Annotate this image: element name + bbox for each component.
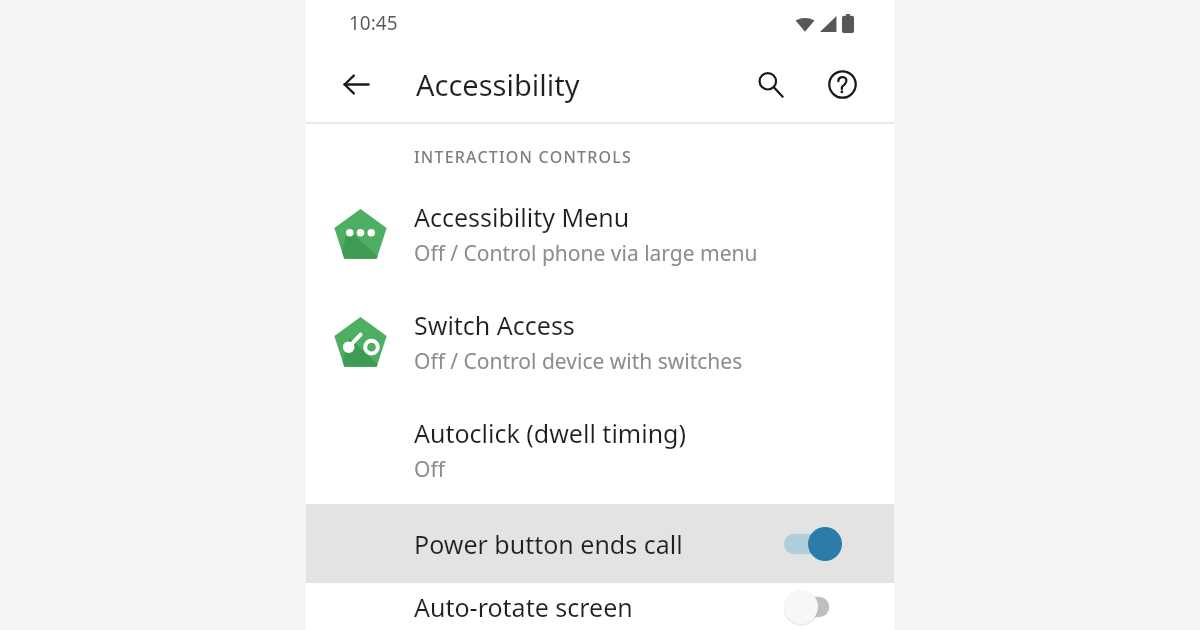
staticText: Off: [414, 455, 445, 484]
staticText: Power button ends call: [414, 527, 683, 561]
staticText: 10:45: [349, 10, 398, 36]
staticText: Accessibility: [416, 65, 580, 104]
staticText: Off / Control phone via large menu: [414, 239, 758, 268]
staticText: Accessibility Menu: [414, 200, 630, 234]
staticText: Autoclick (dwell timing): [414, 416, 686, 450]
button[interactable]: Accessibility Menu: [306, 180, 894, 288]
button[interactable]: Power button ends call: [306, 504, 894, 583]
button[interactable]: Auto-rotate screen: [306, 583, 894, 630]
staticText: Off / Control device with switches: [414, 347, 743, 376]
button[interactable]: Help: [818, 60, 866, 108]
button[interactable]: Autoclick (dwell timing): [306, 396, 894, 504]
button[interactable]: Switch Access: [306, 288, 894, 396]
staticText: INTERACTION CONTROLS: [414, 146, 632, 168]
button[interactable]: Search: [746, 60, 794, 108]
staticText: Switch Access: [414, 308, 575, 342]
staticText: Auto-rotate screen: [414, 590, 633, 624]
button[interactable]: Back: [332, 60, 380, 108]
